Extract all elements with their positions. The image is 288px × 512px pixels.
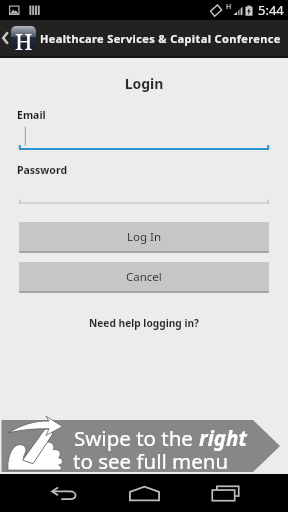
button[interactable]: Back (29, 474, 99, 512)
staticText: right (199, 424, 247, 452)
button[interactable]: Home (109, 474, 179, 512)
staticText: Login (0, 74, 288, 93)
button[interactable]: Log In (19, 222, 269, 251)
staticText: H (15, 26, 33, 51)
staticText: 5:44 (258, 1, 284, 19)
button[interactable]: Need help logging in? (0, 316, 288, 330)
staticText: Swipe to the (74, 424, 199, 452)
staticText: Email (17, 108, 46, 122)
staticText: Password (17, 163, 68, 177)
staticText: Log In (127, 229, 162, 245)
staticText: to see full menu (73, 447, 229, 475)
button[interactable]: Cancel (19, 262, 269, 291)
staticText: Cancel (126, 269, 162, 285)
staticText: Need help logging in? (89, 316, 199, 330)
button[interactable]: Recent apps (190, 474, 260, 512)
staticText: Healthcare Services & Capital Conference (40, 31, 281, 46)
staticText: H (226, 2, 232, 12)
button[interactable]: Back (0, 20, 11, 56)
